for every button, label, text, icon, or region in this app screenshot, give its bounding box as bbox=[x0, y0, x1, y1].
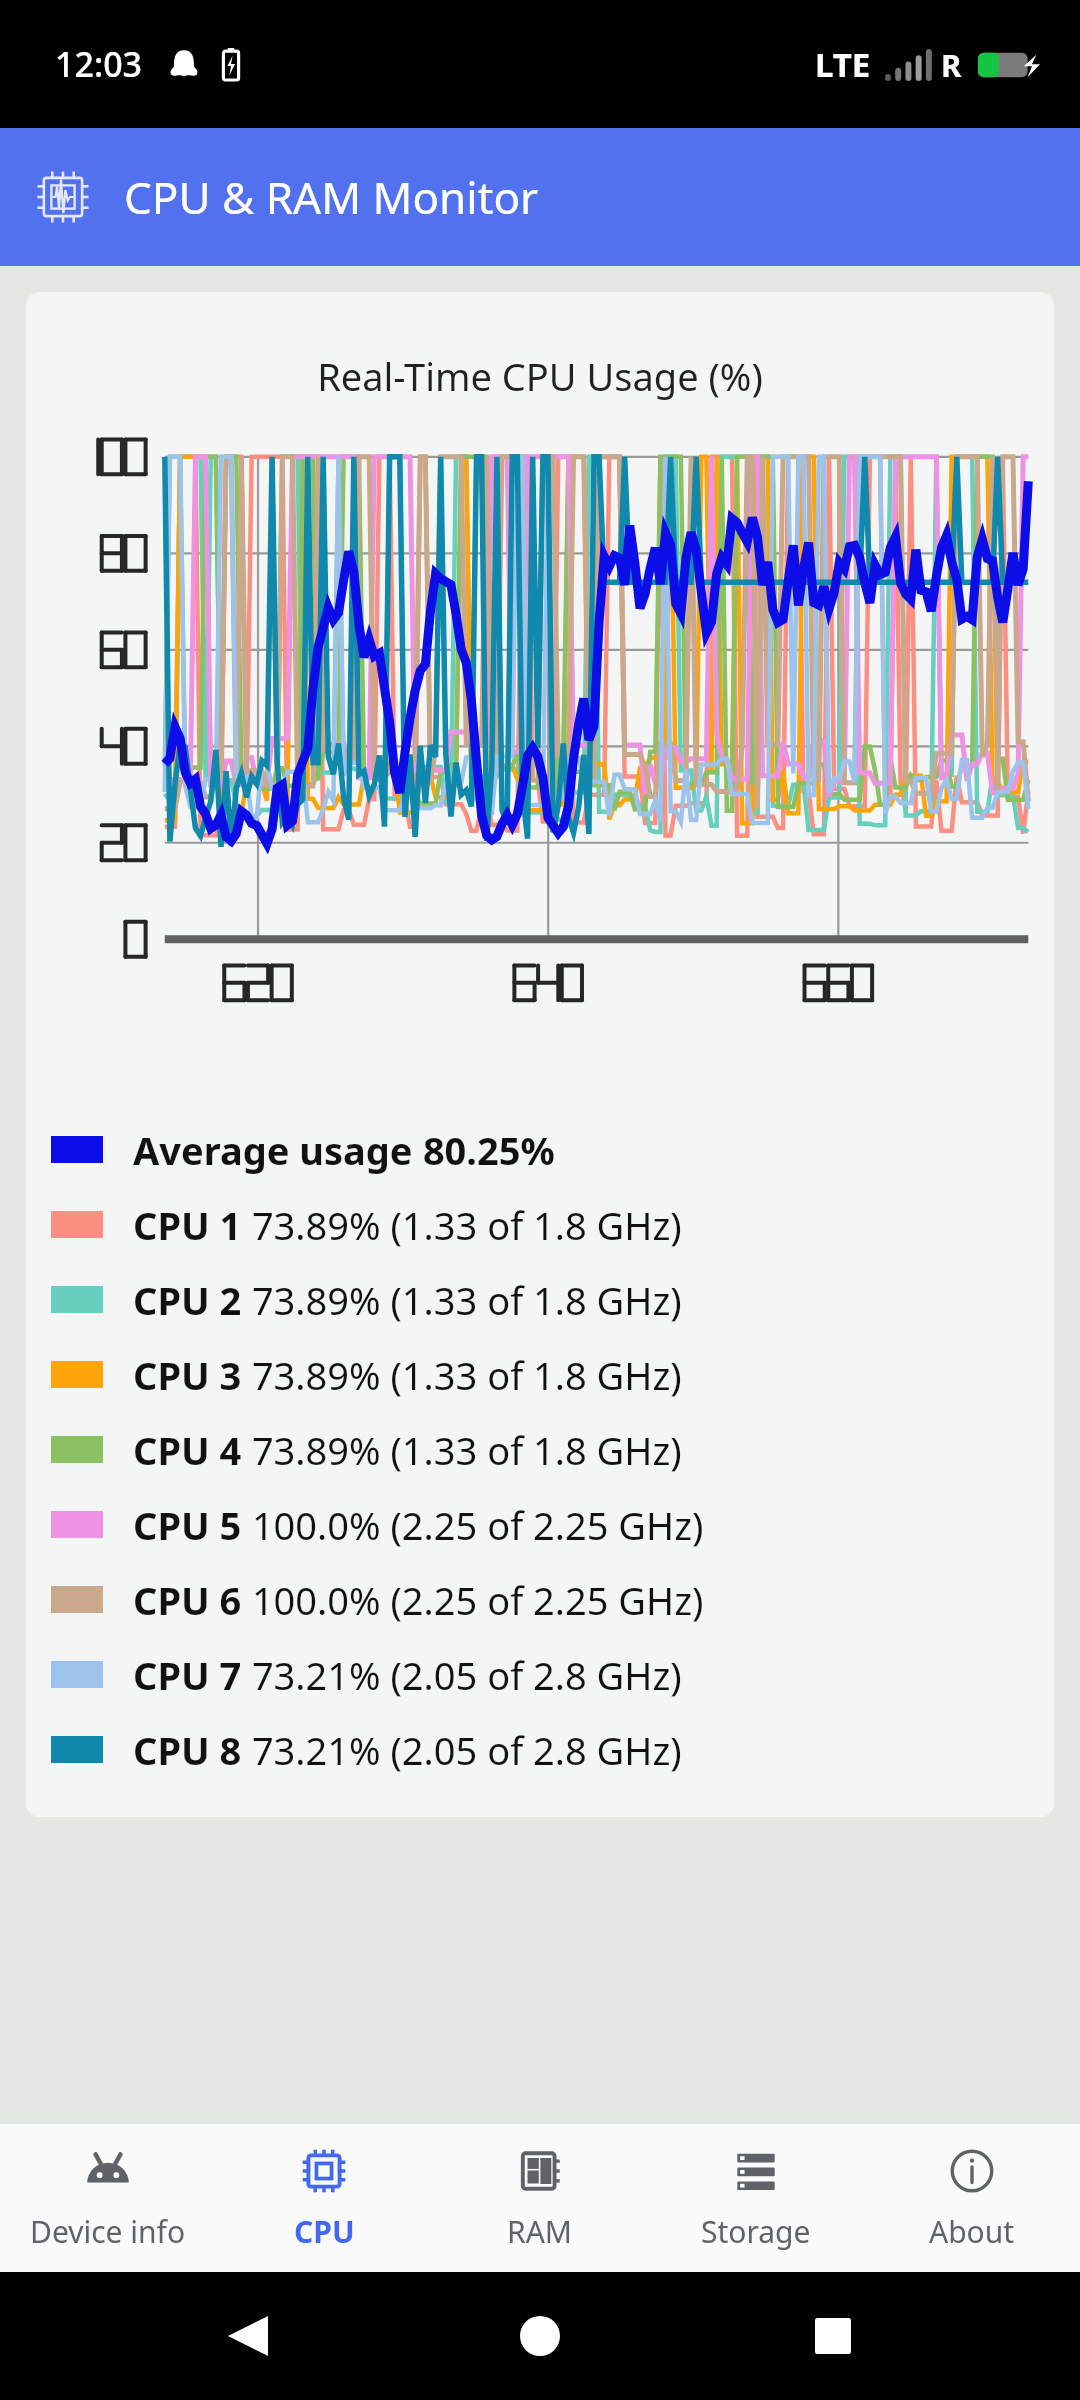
staticText: 80.25% bbox=[413, 1124, 555, 1176]
staticText: 73.89% (1.33 of 1.8 GHz) bbox=[242, 1424, 682, 1476]
button[interactable]: Storage bbox=[648, 2124, 864, 2272]
staticText: Average usage bbox=[133, 1124, 413, 1176]
staticText: CPU 6 bbox=[133, 1574, 242, 1626]
button[interactable]: CPU 3 bbox=[26, 1337, 1054, 1412]
button[interactable]: Back bbox=[203, 2291, 293, 2381]
staticText: 12:03 bbox=[55, 41, 143, 87]
staticText: About bbox=[929, 2211, 1015, 2252]
button[interactable]: RAM bbox=[432, 2124, 648, 2272]
staticText: CPU 2 bbox=[133, 1274, 242, 1326]
staticText: LTE bbox=[815, 42, 871, 87]
staticText: CPU 8 bbox=[133, 1724, 242, 1776]
staticText: Storage bbox=[701, 2211, 811, 2252]
button[interactable]: CPU 2 bbox=[26, 1262, 1054, 1337]
button[interactable]: Home bbox=[495, 2291, 585, 2381]
staticText: Real-Time CPU Usage (%) bbox=[26, 350, 1054, 402]
staticText: CPU 1 bbox=[133, 1199, 242, 1251]
button[interactable]: Average usage bbox=[26, 1112, 1054, 1187]
button[interactable]: CPU 1 bbox=[26, 1187, 1054, 1262]
button[interactable]: CPU 8 bbox=[26, 1712, 1054, 1787]
staticText: R bbox=[941, 44, 962, 86]
button[interactable]: CPU 4 bbox=[26, 1412, 1054, 1487]
staticText: RAM bbox=[507, 2211, 573, 2252]
staticText: 73.89% (1.33 of 1.8 GHz) bbox=[242, 1199, 682, 1251]
staticText: CPU 5 bbox=[133, 1499, 242, 1551]
staticText: 73.21% (2.05 of 2.8 GHz) bbox=[242, 1724, 682, 1776]
staticText: CPU 3 bbox=[133, 1349, 242, 1401]
staticText: 73.89% (1.33 of 1.8 GHz) bbox=[242, 1349, 682, 1401]
button[interactable]: Recents bbox=[788, 2291, 878, 2381]
staticText: 100.0% (2.25 of 2.25 GHz) bbox=[242, 1574, 704, 1626]
staticText: 100.0% (2.25 of 2.25 GHz) bbox=[242, 1499, 704, 1551]
staticText: CPU 7 bbox=[133, 1649, 242, 1701]
staticText: 73.21% (2.05 of 2.8 GHz) bbox=[242, 1649, 682, 1701]
staticText: CPU & RAM Monitor bbox=[124, 167, 539, 227]
button[interactable]: CPU bbox=[216, 2124, 432, 2272]
button[interactable]: CPU 7 bbox=[26, 1637, 1054, 1712]
staticText: CPU 4 bbox=[133, 1424, 242, 1476]
staticText: Device info bbox=[30, 2211, 186, 2252]
button[interactable]: Device info bbox=[0, 2124, 216, 2272]
staticText: 73.89% (1.33 of 1.8 GHz) bbox=[242, 1274, 682, 1326]
staticText: CPU bbox=[294, 2211, 355, 2252]
button[interactable]: Real-Time CPU Usage (%) bbox=[26, 292, 1054, 1817]
button[interactable]: About bbox=[864, 2124, 1080, 2272]
button[interactable]: CPU 6 bbox=[26, 1562, 1054, 1637]
button[interactable]: CPU 5 bbox=[26, 1487, 1054, 1562]
